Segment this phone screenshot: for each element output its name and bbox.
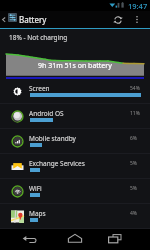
button[interactable]: Android OS [0, 104, 150, 129]
button[interactable]: Navigate up [0, 12, 8, 27]
staticText: 4% [130, 210, 138, 217]
button[interactable]: Refresh [112, 14, 124, 26]
staticText: 18% - Not charging [9, 33, 68, 42]
staticText: Battery [19, 14, 47, 25]
staticText: 54% [130, 85, 140, 92]
button[interactable]: Back [22, 231, 40, 245]
button[interactable]: Maps [0, 204, 150, 229]
button[interactable]: More options [132, 13, 142, 23]
button[interactable]: Screen [0, 79, 150, 104]
staticText: 9h 31m 51s on battery [38, 61, 112, 71]
staticText: 19:47 [128, 1, 148, 11]
button[interactable]: Mobile standby [0, 129, 150, 154]
button[interactable]: Recent apps [106, 231, 124, 245]
staticText: Exchange Services [29, 159, 85, 168]
staticText: 11% [130, 110, 140, 117]
staticText: 6% [130, 135, 138, 142]
staticText: Screen [29, 84, 50, 93]
staticText: 5% [130, 160, 138, 167]
staticText: Mobile standby [29, 134, 76, 143]
button[interactable]: Home [66, 231, 84, 245]
staticText: Maps [29, 209, 46, 218]
staticText: Android OS [29, 109, 64, 118]
button[interactable]: WiFi [0, 179, 150, 204]
staticText: WiFi [29, 184, 42, 193]
button[interactable]: Exchange Services [0, 154, 150, 179]
staticText: 5% [130, 185, 138, 192]
